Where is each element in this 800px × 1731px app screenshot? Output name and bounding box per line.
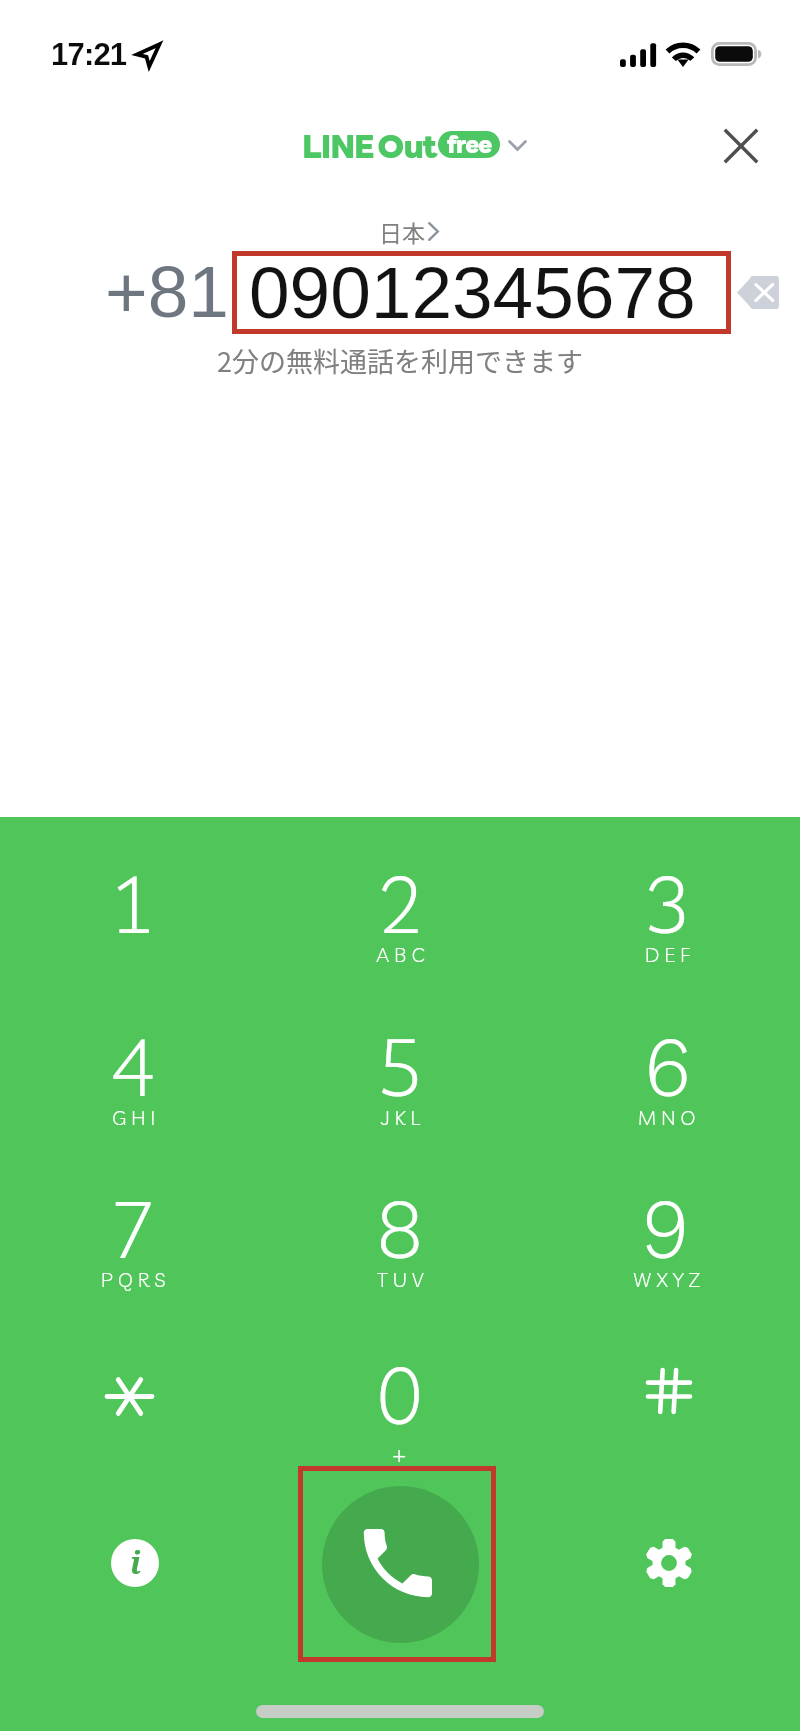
button[interactable]: 4 [0, 1017, 266, 1180]
button[interactable]: Delete [734, 272, 782, 312]
button[interactable]: 2 [266, 854, 533, 1017]
staticText: Out [377, 130, 437, 162]
staticText: + [392, 1438, 407, 1468]
staticText: 17:21 [51, 37, 127, 72]
staticText: WXYZ [633, 1267, 706, 1292]
staticText: DEF [645, 942, 695, 967]
staticText: JKL [381, 1105, 425, 1130]
staticText: GHI [112, 1105, 161, 1130]
staticText: free [447, 132, 492, 155]
button[interactable]: Settings [644, 1538, 694, 1588]
button[interactable]: Pound [533, 1345, 800, 1508]
staticText: 4 [109, 1017, 157, 1116]
button[interactable]: 0 [266, 1345, 533, 1508]
staticText: TUV [377, 1267, 429, 1292]
staticText: +81 [105, 251, 229, 333]
staticText: 8 [376, 1179, 424, 1278]
button[interactable]: 9 [533, 1179, 800, 1342]
staticText: 1 [109, 854, 157, 953]
button[interactable]: 8 [266, 1179, 533, 1342]
staticText: 7 [109, 1179, 157, 1278]
button[interactable]: 日本 [370, 214, 450, 248]
button[interactable]: Close [710, 115, 772, 177]
staticText: i [130, 1541, 141, 1583]
staticText: 5 [376, 1017, 424, 1116]
button[interactable]: 5 [266, 1017, 533, 1180]
staticText: ABC [376, 942, 430, 967]
staticText: 0 [376, 1345, 424, 1444]
button[interactable]: 6 [533, 1017, 800, 1180]
staticText: 09012345678 [249, 252, 696, 334]
button[interactable]: LINE [296, 118, 534, 158]
button[interactable]: 3 [533, 854, 800, 1017]
staticText: PQRS [101, 1267, 171, 1292]
staticText: 2分の無料通話を利用できます [0, 341, 800, 380]
staticText: 6 [643, 1017, 691, 1116]
staticText: 日本 [379, 215, 425, 248]
staticText: 9 [643, 1179, 691, 1278]
button[interactable]: 1 [0, 854, 266, 1017]
button[interactable]: 7 [0, 1179, 266, 1342]
button[interactable]: Star [0, 1345, 266, 1508]
staticText: MNO [638, 1105, 701, 1130]
staticText: LINE [302, 130, 374, 162]
staticText: 2 [376, 854, 424, 953]
staticText: 3 [643, 854, 691, 953]
button[interactable]: Call [322, 1486, 479, 1643]
button[interactable]: Information [111, 1539, 159, 1587]
